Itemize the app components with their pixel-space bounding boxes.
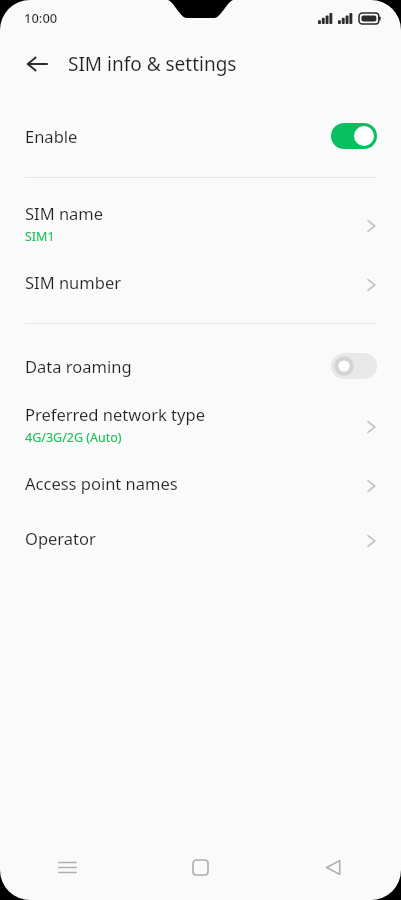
staticText: Data roaming [25, 355, 132, 377]
button[interactable]: Back [14, 41, 60, 87]
staticText: Enable [25, 125, 78, 147]
staticText: 4G/3G/2G (Auto) [25, 429, 122, 446]
button[interactable]: SIM name [0, 192, 401, 254]
button[interactable]: Operator [0, 510, 401, 565]
button[interactable]: Enable [0, 108, 401, 163]
staticText: 10:00 [24, 9, 58, 27]
staticText: SIM name [25, 202, 104, 224]
button[interactable]: Recent apps [44, 844, 90, 890]
staticText: Access point names [25, 472, 178, 494]
button[interactable]: SIM number [0, 254, 401, 309]
button[interactable]: Preferred network type [0, 393, 401, 455]
button[interactable]: Toggle on [331, 123, 377, 149]
button[interactable]: Access point names [0, 455, 401, 510]
staticText: Preferred network type [25, 403, 205, 425]
button[interactable]: Data roaming [0, 338, 401, 393]
staticText: SIM info & settings [68, 51, 237, 77]
button[interactable]: Back [310, 844, 356, 890]
button[interactable]: Toggle off [331, 353, 377, 379]
staticText: Operator [25, 527, 96, 549]
staticText: SIM1 [25, 228, 55, 245]
button[interactable]: Home [177, 844, 223, 890]
staticText: SIM number [25, 271, 121, 293]
